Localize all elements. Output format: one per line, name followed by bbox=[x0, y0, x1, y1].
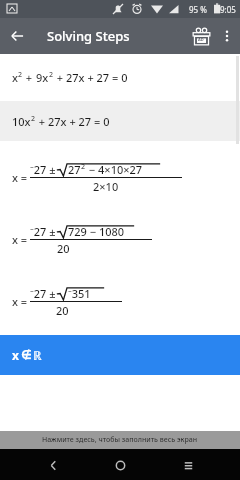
button[interactable]: x = bbox=[0, 153, 240, 201]
button[interactable]: x bbox=[0, 54, 240, 101]
button[interactable]: Recent apps bbox=[173, 450, 203, 480]
staticText: + bbox=[23, 70, 36, 85]
staticText: Solving Steps bbox=[47, 27, 130, 45]
staticText: ⁻27 ± bbox=[30, 286, 56, 301]
button[interactable]: Watch ad for reward bbox=[186, 21, 216, 51]
staticText: 10x bbox=[12, 114, 31, 129]
staticText: 2 bbox=[81, 162, 86, 172]
staticText: x = bbox=[12, 170, 28, 185]
staticText: x = bbox=[12, 232, 28, 247]
button[interactable]: x bbox=[0, 335, 240, 375]
staticText: 9:05 bbox=[220, 4, 236, 15]
staticText: AD bbox=[198, 37, 204, 42]
staticText: ⁻27 ± bbox=[30, 224, 56, 239]
staticText: ℝ bbox=[33, 347, 42, 363]
button[interactable]: Нажмите здесь, чтобы заполнить весь экра… bbox=[0, 431, 240, 449]
staticText: 729 − 1080 bbox=[68, 224, 125, 239]
staticText: − 4×10×27 bbox=[86, 162, 143, 177]
staticText: ∉ bbox=[21, 348, 32, 362]
staticText: 95 % bbox=[189, 4, 207, 15]
button[interactable]: x = bbox=[0, 277, 240, 325]
staticText: + 27x + 27 = 0 bbox=[36, 114, 110, 129]
staticText: 20 bbox=[57, 241, 70, 255]
staticText: 2×10 bbox=[93, 179, 119, 193]
staticText: 9x bbox=[36, 70, 49, 85]
staticText: x bbox=[12, 347, 19, 363]
staticText: x = bbox=[12, 294, 28, 309]
button[interactable]: Back bbox=[38, 450, 68, 480]
staticText: 2 bbox=[49, 70, 54, 80]
staticText: ⁻351 bbox=[68, 286, 91, 301]
staticText: x bbox=[12, 70, 18, 85]
staticText: 2 bbox=[31, 114, 36, 124]
staticText: 20 bbox=[56, 303, 69, 317]
button[interactable]: More options bbox=[214, 23, 240, 49]
staticText: Нажмите здесь, чтобы заполнить весь экра… bbox=[42, 435, 198, 445]
button[interactable]: x = bbox=[0, 215, 240, 263]
staticText: + 27x + 27 = 0 bbox=[54, 70, 128, 85]
button[interactable]: Back bbox=[0, 19, 34, 53]
button[interactable]: Home bbox=[105, 450, 135, 480]
staticText: 2 bbox=[18, 70, 23, 80]
staticText: ⁻27 ± bbox=[30, 162, 56, 177]
button[interactable]: 10x bbox=[0, 101, 240, 141]
staticText: 27 bbox=[68, 162, 81, 177]
